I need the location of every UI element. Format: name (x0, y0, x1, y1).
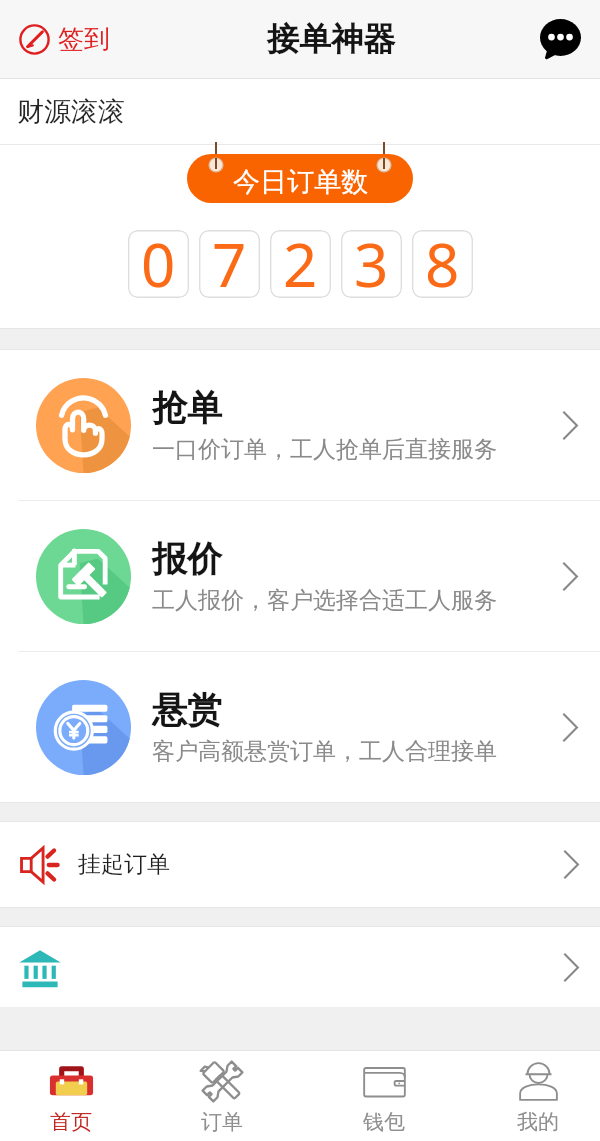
button[interactable]: 报价 (0, 501, 600, 651)
button[interactable]: 首页 (0, 1051, 150, 1141)
button[interactable]: 钱包 (300, 1051, 450, 1141)
staticText: 3 (354, 230, 389, 291)
button[interactable]: 抢单 (0, 350, 600, 500)
staticText: 订单 (201, 1109, 243, 1135)
staticText: 今日订单数 (233, 165, 368, 199)
staticText: 7 (212, 230, 247, 291)
staticText: 一口价订单，工人抢单后直接服务 (152, 435, 497, 464)
staticText: 接单神器 (267, 19, 395, 59)
button[interactable]: 订单 (150, 1051, 300, 1141)
button[interactable]: 挂起订单 (0, 822, 600, 907)
staticText: 我的 (517, 1109, 559, 1135)
staticText: 首页 (50, 1109, 92, 1135)
staticText: 挂起订单 (78, 850, 170, 879)
staticText: 客户高额悬赏订单，工人合理接单 (152, 737, 497, 766)
button[interactable]: 悬赏 (0, 652, 600, 802)
staticText: 抢单 (152, 386, 222, 430)
staticText: 8 (425, 230, 460, 291)
staticText: 0 (141, 230, 176, 291)
staticText: 工人报价，客户选择合适工人服务 (152, 586, 497, 615)
button[interactable]: Messages (536, 15, 585, 64)
staticText: 2 (283, 230, 318, 291)
staticText: 悬赏 (152, 688, 222, 732)
staticText: 财源滚滚 (17, 95, 125, 129)
staticText: 报价 (152, 537, 222, 581)
button[interactable] (0, 927, 600, 1007)
staticText: 签到 (58, 23, 110, 56)
staticText: 钱包 (363, 1109, 405, 1135)
button[interactable]: 我的 (450, 1051, 600, 1141)
button[interactable]: 签到 (11, 17, 118, 62)
